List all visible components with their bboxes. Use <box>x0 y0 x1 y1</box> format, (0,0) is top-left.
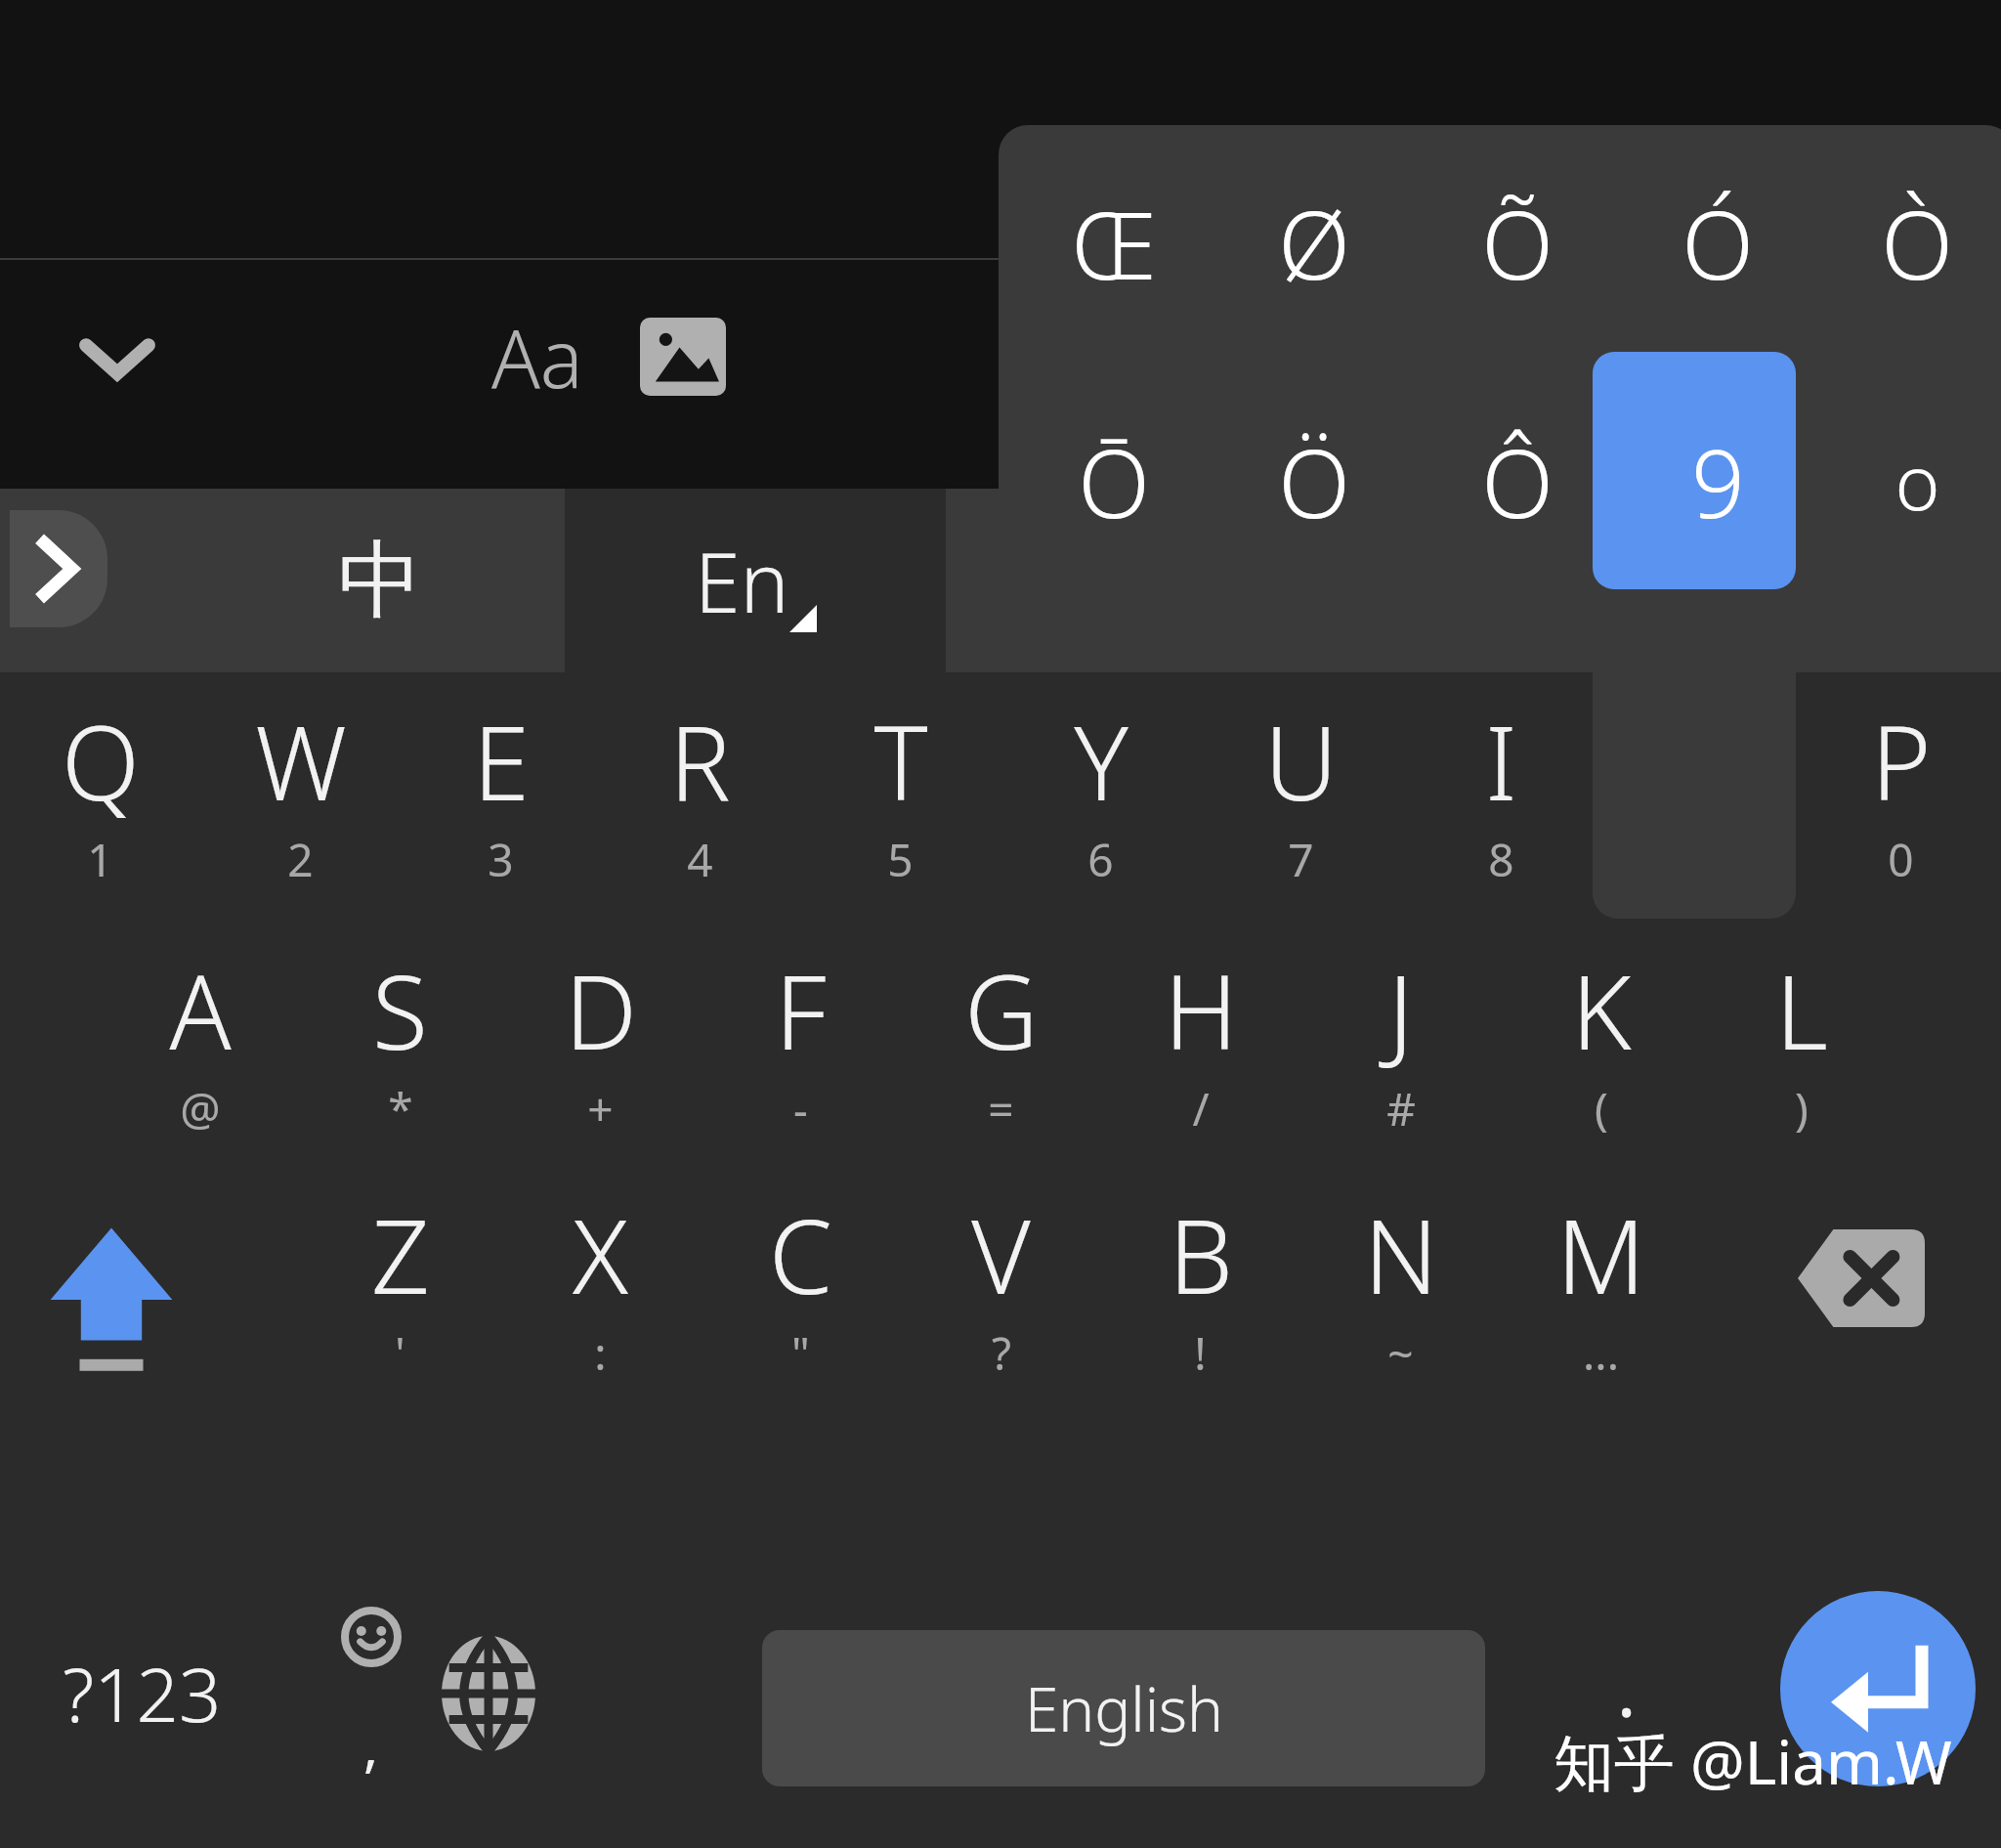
button[interactable]: O <box>1600 684 1801 928</box>
staticText: - <box>793 1078 808 1139</box>
button[interactable]: Insert image <box>621 303 744 410</box>
staticText: Ō <box>1078 417 1150 545</box>
button[interactable]: Emoji <box>274 1603 469 1827</box>
staticText: ? <box>992 1322 1011 1384</box>
button[interactable]: J <box>1300 933 1501 1178</box>
button[interactable]: N <box>1300 1178 1501 1422</box>
staticText: 2 <box>287 829 314 890</box>
staticText: 1 <box>87 829 113 890</box>
button[interactable]: E <box>401 684 601 928</box>
button[interactable]: Q <box>0 684 200 928</box>
button[interactable]: M <box>1501 1178 1701 1422</box>
staticText: I <box>1485 692 1517 831</box>
staticText: U <box>1264 692 1338 831</box>
staticText: Ô <box>1481 417 1554 545</box>
button[interactable]: Expand toolbar <box>10 510 107 627</box>
staticText: = <box>988 1078 1014 1139</box>
staticText: R <box>669 692 731 831</box>
button[interactable]: 中 <box>0 489 565 672</box>
button[interactable]: ?123 <box>20 1603 264 1827</box>
staticText: P <box>1871 692 1932 831</box>
staticText: English <box>1025 1667 1223 1749</box>
button[interactable]: R <box>600 684 800 928</box>
button[interactable]: Aa <box>469 293 606 420</box>
button[interactable]: Switch language <box>391 1603 586 1827</box>
button[interactable]: S <box>300 933 500 1178</box>
staticText: @ <box>180 1078 221 1139</box>
button[interactable]: Ō <box>1016 403 1212 559</box>
staticText: 0 <box>1888 829 1914 890</box>
staticText: , <box>363 1708 379 1783</box>
staticText: H <box>1164 941 1238 1080</box>
button[interactable]: En <box>565 489 946 672</box>
button[interactable]: Y <box>1000 684 1201 928</box>
staticText: ?123 <box>63 1643 222 1744</box>
button[interactable]: F <box>701 933 901 1178</box>
staticText: Z <box>371 1185 430 1324</box>
staticText: Ø <box>1278 179 1350 307</box>
button[interactable]: . <box>1544 1603 1710 1827</box>
button[interactable]: K <box>1501 933 1701 1178</box>
staticText: Œ <box>1071 179 1157 307</box>
button[interactable]: Enter <box>1780 1591 1976 1786</box>
button[interactable]: V <box>901 1178 1101 1422</box>
button[interactable]: B <box>1100 1178 1300 1422</box>
staticText: 5 <box>887 829 914 890</box>
staticText: 8 <box>1488 829 1514 890</box>
staticText: C <box>769 1185 832 1324</box>
staticText: # <box>1386 1078 1416 1139</box>
staticText: Ö <box>1278 417 1350 545</box>
button[interactable]: D <box>500 933 701 1178</box>
button[interactable]: G <box>901 933 1101 1178</box>
staticText: 9 <box>1691 417 1745 545</box>
staticText: W <box>255 692 347 831</box>
button[interactable] <box>1593 352 1796 589</box>
staticText: A <box>169 941 232 1080</box>
staticText: Aa <box>491 302 583 411</box>
staticText: J <box>1387 941 1414 1080</box>
staticText: B <box>1169 1185 1233 1324</box>
button[interactable]: W <box>200 684 401 928</box>
button[interactable]: Collapse <box>59 298 176 415</box>
button[interactable]: Œ <box>1016 164 1212 321</box>
staticText: ( <box>1595 1078 1608 1139</box>
button[interactable]: X <box>500 1178 701 1422</box>
button[interactable]: Ö <box>1216 403 1412 559</box>
staticText: En <box>695 525 789 636</box>
staticText: 3 <box>488 829 514 890</box>
button[interactable]: 9 <box>1620 403 1815 559</box>
button[interactable]: A <box>100 933 300 1178</box>
staticText: N <box>1364 1185 1438 1324</box>
button[interactable]: Backspace <box>1701 1178 2001 1422</box>
button[interactable]: Ò <box>1819 164 2001 321</box>
staticText: o <box>1895 429 1940 533</box>
staticText: X <box>573 1185 628 1324</box>
button[interactable]: Ó <box>1620 164 1815 321</box>
button[interactable]: Shift <box>0 1178 300 1422</box>
staticText: Ó <box>1682 179 1754 307</box>
button[interactable]: English <box>762 1630 1485 1786</box>
button[interactable]: o <box>1819 403 2001 559</box>
button[interactable]: I <box>1401 684 1601 928</box>
button[interactable]: C <box>701 1178 901 1422</box>
button[interactable]: H <box>1100 933 1300 1178</box>
button[interactable]: Z <box>300 1178 500 1422</box>
staticText: ' <box>395 1322 405 1384</box>
button[interactable]: Õ <box>1420 164 1615 321</box>
button[interactable]: Ô <box>1420 403 1615 559</box>
button[interactable]: Ø <box>1216 164 1412 321</box>
button[interactable]: T <box>800 684 1000 928</box>
staticText: S <box>372 941 428 1080</box>
staticText: Ò <box>1881 179 1953 307</box>
staticText: 6 <box>1087 829 1114 890</box>
staticText: M <box>1556 1185 1645 1324</box>
button[interactable]: P <box>1801 684 2001 928</box>
button[interactable]: U <box>1201 684 1401 928</box>
staticText: Y <box>1074 692 1128 831</box>
button[interactable]: L <box>1701 933 1901 1178</box>
staticText: Q <box>62 692 140 831</box>
staticText: T <box>873 692 928 831</box>
staticText: V <box>971 1185 1031 1324</box>
